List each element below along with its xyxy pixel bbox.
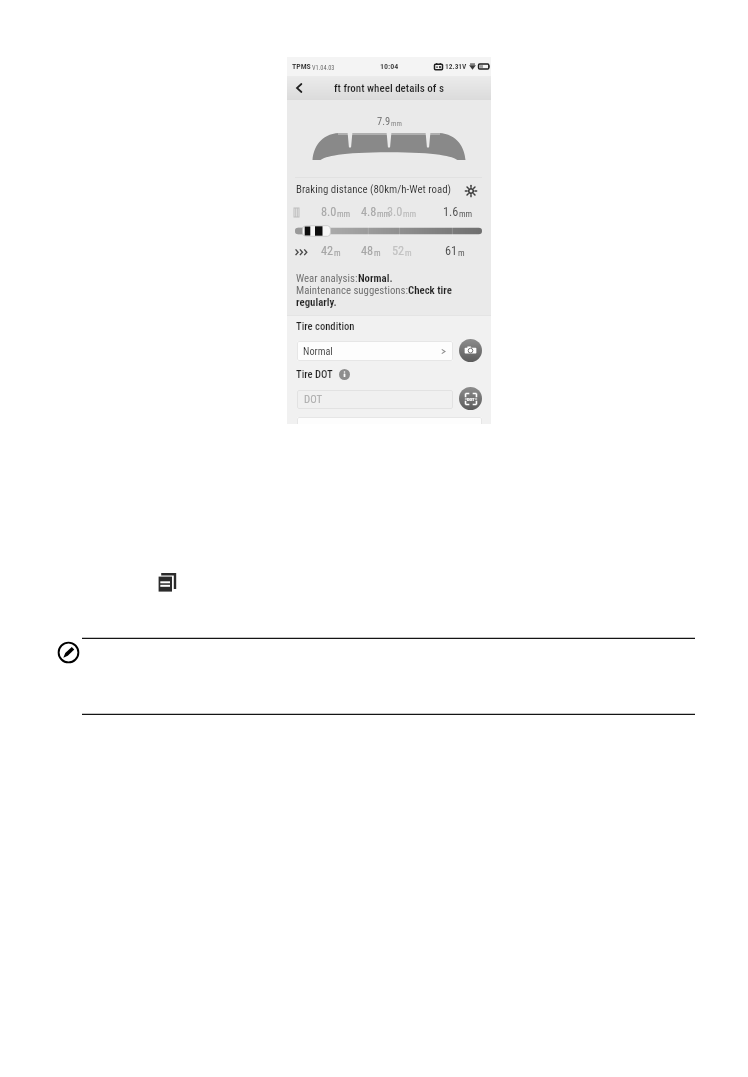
staticText: 48	[361, 244, 374, 258]
button[interactable]: Normal	[297, 341, 453, 361]
staticText: Wear analysis:	[296, 272, 358, 285]
staticText: Check tire	[408, 284, 452, 297]
staticText: 12.31V	[445, 62, 467, 71]
staticText: mm	[403, 209, 417, 219]
staticText: m	[458, 248, 465, 258]
staticText: Normal	[303, 345, 333, 357]
staticText: m	[374, 248, 381, 258]
staticText: V1.04.03	[312, 64, 335, 71]
button[interactable]: Copy	[158, 572, 177, 593]
staticText: mm	[391, 119, 402, 127]
staticText: 42	[321, 244, 334, 258]
staticText: 61	[445, 244, 458, 258]
staticText: Maintenance suggestions:	[296, 284, 408, 297]
button[interactable]: Edit	[58, 642, 79, 663]
staticText: m	[405, 248, 412, 258]
staticText: 52	[392, 244, 405, 258]
staticText: Tire condition	[296, 320, 355, 332]
staticText: regularly.	[296, 296, 337, 309]
staticText: DOT	[467, 397, 475, 402]
button[interactable]: Scan DOT	[459, 387, 482, 410]
staticText: TPMS	[292, 62, 311, 71]
button[interactable]: Back	[290, 76, 308, 100]
button[interactable]: Road condition	[462, 182, 479, 199]
staticText: m	[334, 248, 341, 258]
staticText: 8.0	[321, 205, 337, 219]
staticText: 4.8	[361, 205, 377, 219]
button[interactable]: Take photo	[459, 339, 482, 362]
staticText: DOT	[304, 393, 323, 406]
staticText: Tire DOT	[296, 368, 333, 380]
staticText: Braking distance (80km/h-Wet road)	[296, 183, 452, 196]
staticText: 3.0	[387, 205, 403, 219]
button[interactable]: DOT	[297, 390, 453, 409]
staticText: Normal.	[358, 272, 393, 285]
staticText: 1.6	[443, 205, 459, 219]
staticText: mm	[459, 209, 473, 219]
staticText: mm	[377, 209, 391, 219]
staticText: 7.9	[377, 115, 391, 127]
staticText: 10:04	[380, 62, 399, 71]
staticText: ft front wheel details of s	[334, 82, 444, 95]
button[interactable]: Info	[339, 369, 350, 380]
staticText: mm	[337, 209, 351, 219]
